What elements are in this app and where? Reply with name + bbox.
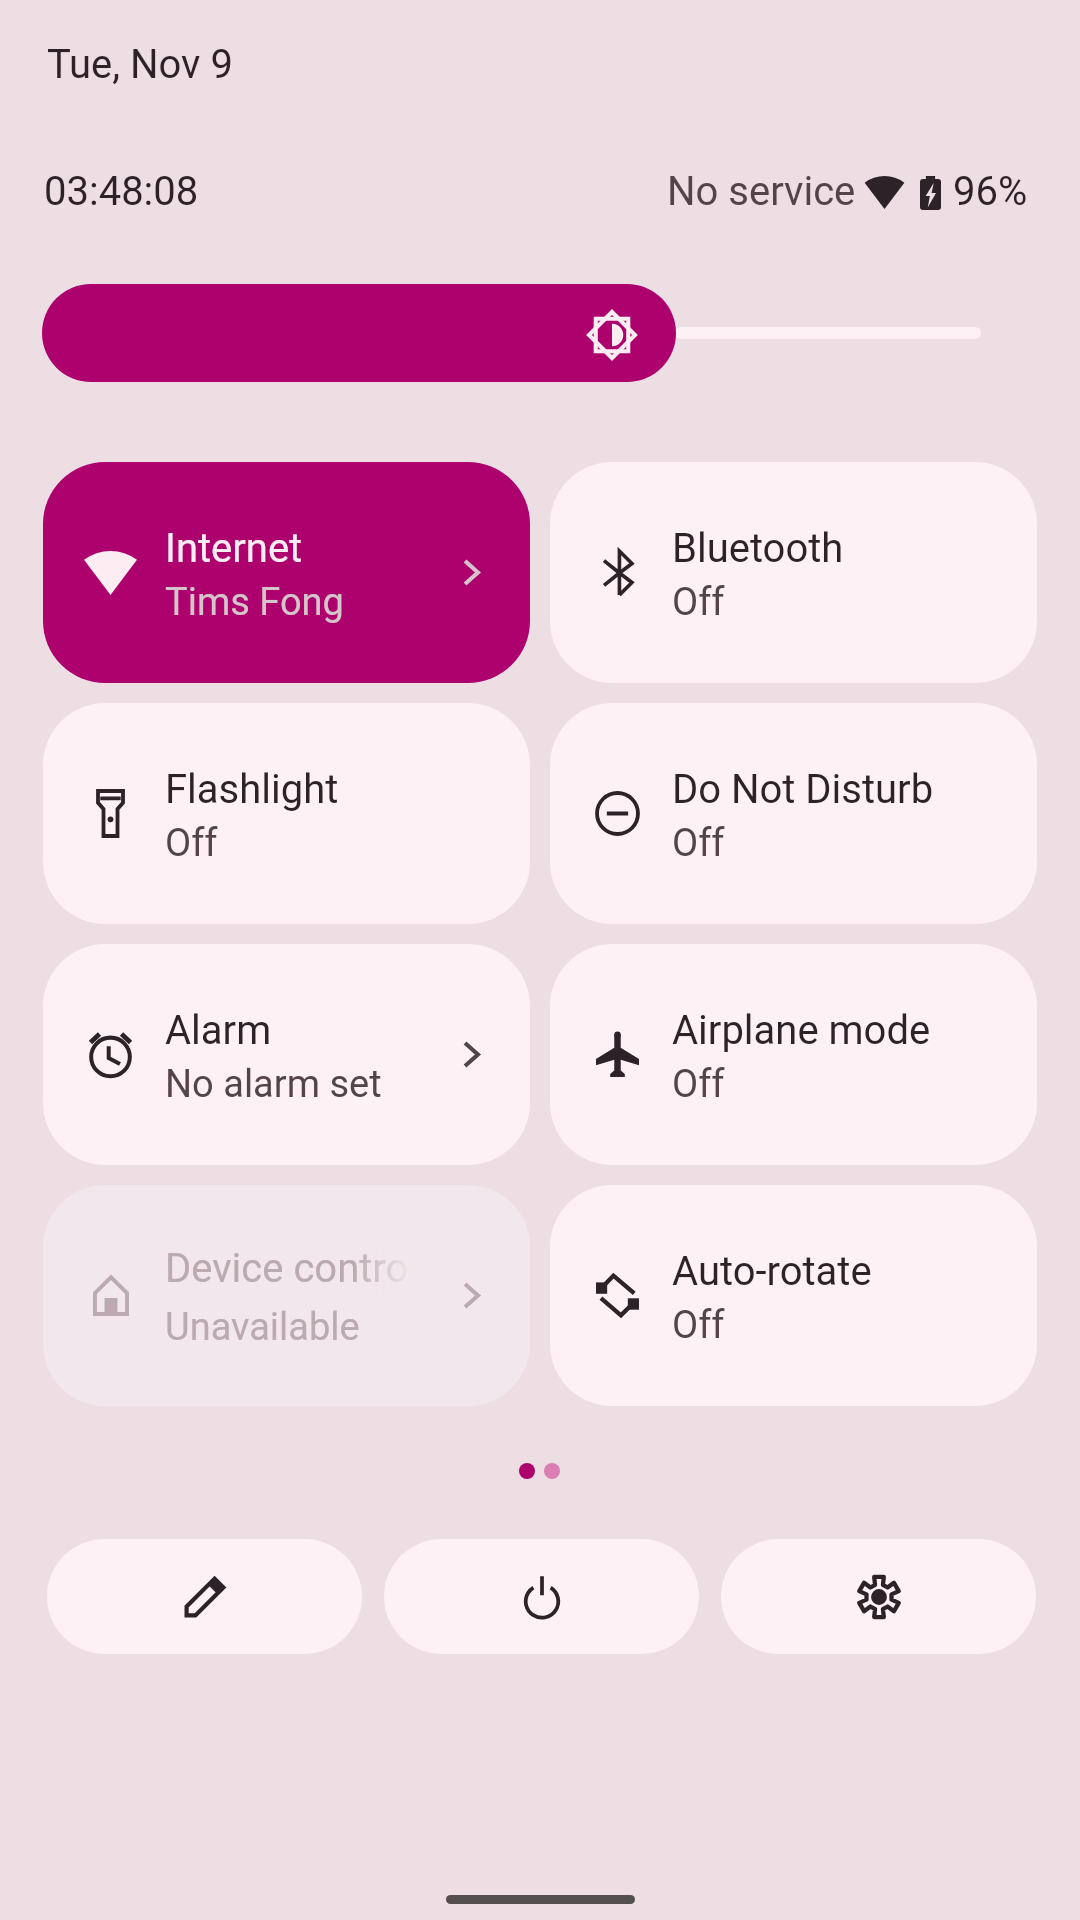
staticText: Off — [672, 1062, 725, 1107]
button[interactable]: Bluetooth — [550, 462, 1037, 683]
staticText: Tue, Nov 9 — [47, 41, 233, 88]
button[interactable]: Power — [384, 1539, 699, 1654]
staticText: Tims Fong — [165, 580, 344, 625]
staticText: Do Not Disturb — [672, 766, 934, 813]
staticText: Off — [165, 821, 218, 866]
staticText: Internet — [165, 525, 303, 572]
staticText: Flashlight — [165, 766, 339, 813]
staticText: Unavailable — [165, 1305, 360, 1350]
button[interactable]: Internet — [43, 462, 530, 683]
staticText: Off — [672, 1303, 725, 1348]
button[interactable]: Settings — [721, 1539, 1036, 1654]
button[interactable]: Auto-rotate — [550, 1185, 1037, 1406]
staticText: Off — [672, 821, 725, 866]
staticText: Auto-rotate — [672, 1248, 872, 1295]
button[interactable]: Alarm — [43, 944, 530, 1165]
button[interactable]: Device controls — [43, 1185, 530, 1406]
button[interactable]: Airplane mode — [550, 944, 1037, 1165]
button[interactable]: Edit — [47, 1539, 362, 1654]
staticText: Bluetooth — [672, 525, 844, 572]
button[interactable]: Brightness — [42, 284, 1037, 382]
staticText: Airplane mode — [672, 1007, 931, 1054]
button[interactable]: Do Not Disturb — [550, 703, 1037, 924]
staticText: Device controls — [165, 1245, 413, 1292]
staticText: Off — [672, 580, 725, 625]
staticText: No alarm set — [165, 1062, 382, 1107]
button[interactable]: Flashlight — [43, 703, 530, 924]
staticText: No service — [667, 168, 856, 215]
staticText: 03:48:08 — [44, 168, 199, 215]
staticText: Alarm — [165, 1007, 272, 1054]
staticText: 96% — [953, 168, 1028, 215]
